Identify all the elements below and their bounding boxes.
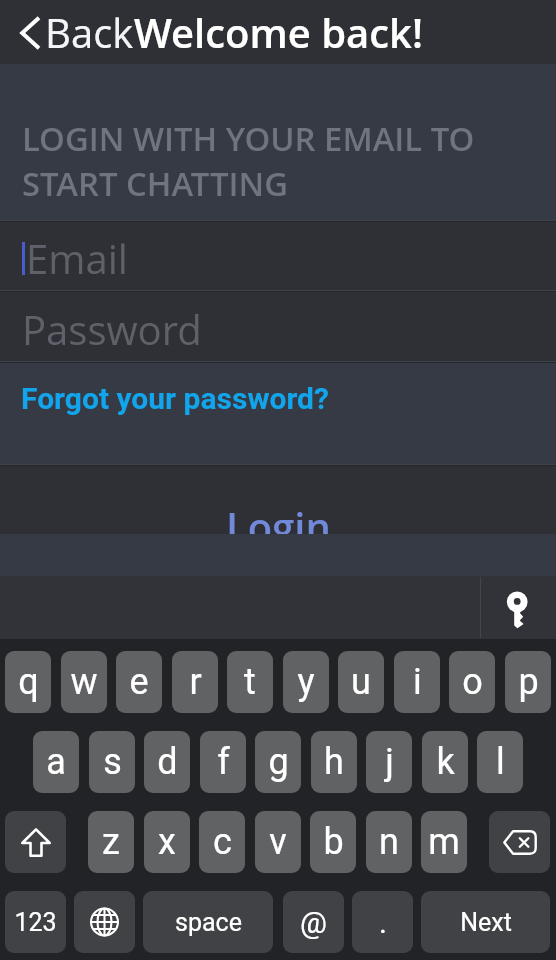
button[interactable]: v	[255, 811, 301, 873]
staticText: 123	[14, 908, 57, 937]
staticText: LOGIN WITH YOUR EMAIL TO START CHATTING	[22, 116, 475, 206]
staticText: Email	[26, 231, 128, 285]
button[interactable]: d	[144, 731, 190, 793]
button[interactable]: Change keyboard	[74, 891, 135, 953]
staticText: w	[70, 661, 98, 703]
staticText: i	[413, 661, 422, 703]
staticText: z	[102, 821, 120, 863]
button[interactable]: n	[366, 811, 412, 873]
button[interactable]: Forgot your password?	[21, 381, 329, 416]
button[interactable]: s	[89, 731, 135, 793]
button[interactable]: i	[394, 651, 440, 713]
staticText: Back	[45, 5, 134, 59]
button[interactable]: c	[199, 811, 245, 873]
staticText: l	[496, 741, 505, 783]
staticText: space	[175, 908, 242, 937]
button[interactable]: space	[143, 891, 273, 953]
staticText: g	[268, 741, 289, 783]
staticText: r	[189, 661, 202, 703]
button[interactable]: b	[310, 811, 356, 873]
button[interactable]: 123	[5, 891, 66, 953]
button[interactable]: r	[172, 651, 218, 713]
staticText: q	[18, 661, 39, 703]
staticText: Login	[226, 499, 331, 534]
button[interactable]: g	[255, 731, 301, 793]
staticText: s	[103, 741, 122, 783]
button[interactable]: Email	[0, 222, 556, 290]
staticText: t	[244, 661, 256, 703]
staticText: p	[518, 661, 539, 703]
button[interactable]: h	[311, 731, 357, 793]
staticText: Password	[22, 302, 202, 356]
button[interactable]: e	[116, 651, 162, 713]
button[interactable]: @	[283, 891, 344, 953]
button[interactable]: Password	[0, 292, 556, 361]
button[interactable]: j	[366, 731, 412, 793]
staticText: j	[385, 741, 394, 783]
button[interactable]: Password manager	[480, 576, 556, 639]
button[interactable]: w	[61, 651, 107, 713]
button[interactable]: Back	[18, 5, 423, 59]
staticText: .	[379, 905, 387, 940]
staticText: c	[213, 821, 232, 863]
button[interactable]: m	[421, 811, 467, 873]
staticText: v	[269, 821, 287, 863]
button[interactable]: y	[283, 651, 329, 713]
staticText: x	[158, 821, 176, 863]
button[interactable]: q	[5, 651, 51, 713]
button[interactable]: o	[449, 651, 495, 713]
button[interactable]: Login	[0, 466, 556, 534]
staticText: k	[436, 741, 455, 783]
button[interactable]: p	[505, 651, 551, 713]
staticText: n	[379, 821, 399, 863]
button[interactable]: f	[200, 731, 246, 793]
staticText: @	[300, 905, 327, 940]
staticText: b	[323, 821, 344, 863]
staticText: d	[157, 741, 178, 783]
button[interactable]: z	[88, 811, 134, 873]
button[interactable]: a	[33, 731, 79, 793]
staticText: u	[351, 661, 371, 703]
button[interactable]: Shift	[5, 811, 66, 873]
button[interactable]: Backspace	[489, 811, 550, 873]
button[interactable]: Next	[421, 891, 550, 953]
staticText: Welcome back!	[134, 5, 423, 59]
staticText: o	[462, 661, 483, 703]
staticText: Next	[460, 908, 512, 937]
button[interactable]: .	[352, 891, 413, 953]
button[interactable]: u	[338, 651, 384, 713]
staticText: m	[428, 821, 460, 863]
staticText: h	[324, 741, 344, 783]
staticText: y	[297, 661, 315, 703]
button[interactable]: l	[477, 731, 523, 793]
button[interactable]: k	[422, 731, 468, 793]
staticText: f	[217, 741, 230, 783]
staticText: e	[129, 661, 149, 703]
button[interactable]: t	[227, 651, 273, 713]
button[interactable]: x	[144, 811, 190, 873]
staticText: a	[46, 741, 66, 783]
